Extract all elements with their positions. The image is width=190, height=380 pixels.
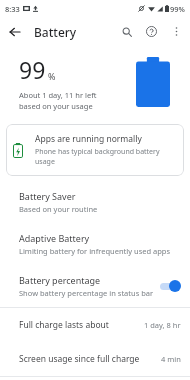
staticText: Adaptive Battery [19, 232, 90, 244]
staticText: Limiting battery for infrequently used a… [19, 246, 171, 256]
button[interactable]: Battery Saver [0, 181, 190, 223]
button[interactable]: Battery percentage [0, 265, 190, 307]
staticText: % [48, 70, 56, 82]
staticText: Apps are running normally [35, 133, 142, 145]
button[interactable]: Battery percentage toggle, on [159, 279, 183, 293]
button[interactable]: Help [139, 19, 164, 44]
button[interactable]: Apps are running normally [6, 124, 184, 176]
staticText: Phone has typical background battery usa… [35, 147, 176, 167]
staticText: 8:33 [5, 4, 20, 14]
button[interactable]: Back [0, 17, 29, 46]
staticText: Based on your routine [19, 204, 98, 214]
staticText: 99% [170, 4, 185, 14]
staticText: 1 day, 8 hr [144, 320, 181, 330]
staticText: Battery [34, 24, 77, 40]
staticText: Battery percentage [19, 274, 101, 286]
button[interactable]: Adaptive Battery [0, 223, 190, 265]
button[interactable]: More options [164, 19, 189, 44]
button[interactable]: Search [114, 19, 139, 44]
staticText: Show battery percentage in status bar [19, 288, 154, 298]
staticText: Full charge lasts about [19, 319, 144, 331]
staticText: About 1 day, 11 hr left based on your us… [19, 90, 97, 111]
staticText: 4 min [161, 354, 181, 364]
staticText: Battery Saver [19, 190, 76, 202]
button[interactable]: Full charge lasts about [0, 308, 190, 342]
staticText: Screen usage since full charge [19, 353, 161, 365]
button[interactable]: Screen usage since full charge [0, 342, 190, 376]
staticText: 99 [19, 54, 46, 85]
